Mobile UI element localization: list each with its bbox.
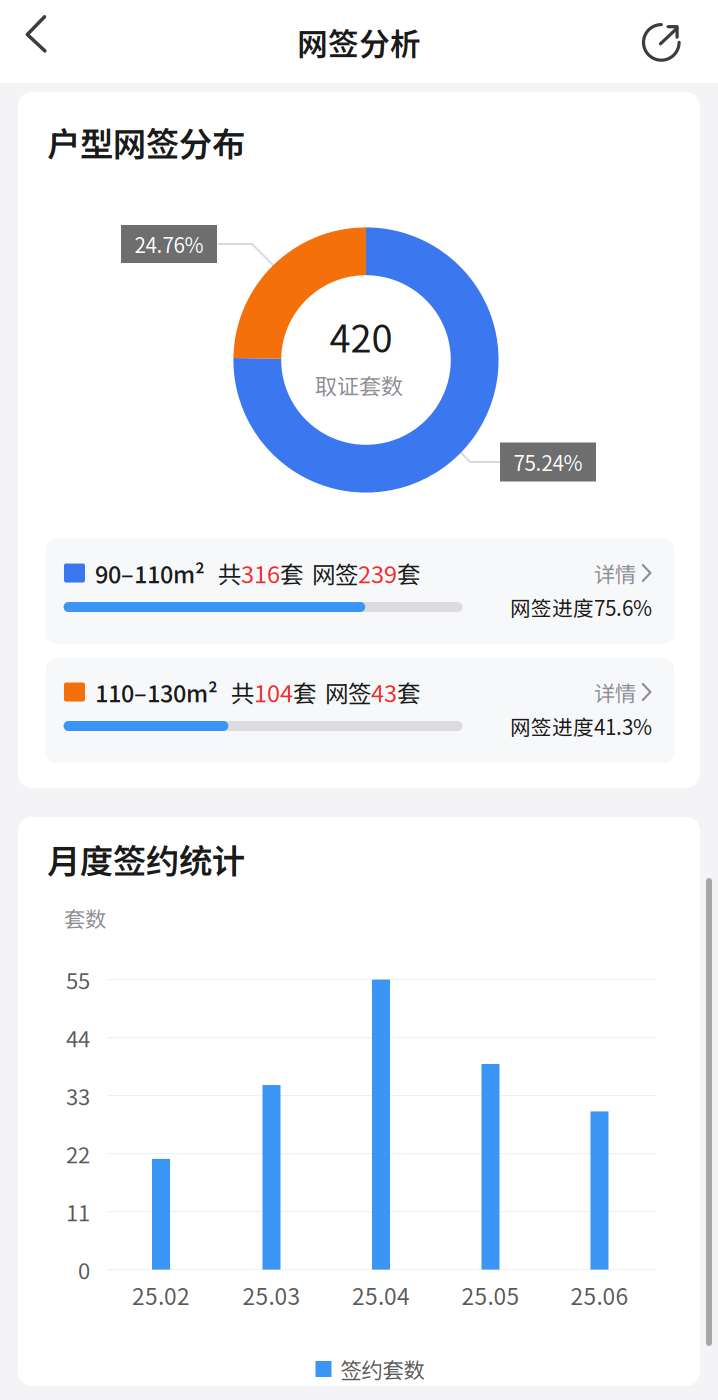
staticText: 0	[78, 1254, 90, 1286]
staticText: 共	[231, 675, 254, 709]
staticText: 网签进度41.3%	[510, 711, 652, 741]
staticText: 共	[218, 556, 241, 590]
staticText: 套数	[64, 903, 106, 933]
staticText: 104	[254, 675, 293, 709]
button[interactable]: Back	[3, 0, 71, 68]
staticText: 316	[241, 556, 280, 590]
staticText: 239	[358, 556, 397, 590]
staticText: 套	[397, 675, 420, 709]
staticText: 套	[280, 556, 303, 590]
button[interactable]: Share	[629, 8, 697, 76]
staticText: 55	[66, 964, 90, 996]
staticText: 25.04	[352, 1279, 410, 1311]
staticText: 110–130m²	[95, 675, 218, 709]
staticText: 详情	[594, 677, 636, 707]
staticText: 24.76%	[134, 229, 203, 259]
staticText: 网签	[312, 556, 358, 590]
staticText: 11	[66, 1196, 90, 1228]
staticText: 网签分析	[297, 20, 421, 64]
staticText: 420	[329, 308, 392, 363]
staticText: 网签进度75.6%	[510, 592, 652, 622]
staticText: 33	[66, 1080, 90, 1112]
staticText: 25.02	[132, 1279, 190, 1311]
staticText: 取证套数	[315, 369, 403, 401]
staticText: 签约套数	[340, 1354, 424, 1384]
staticText: 75.24%	[513, 447, 582, 477]
staticText: 详情	[594, 558, 636, 588]
staticText: 户型网签分布	[47, 118, 245, 166]
staticText: 月度签约统计	[47, 835, 245, 883]
staticText: 25.06	[570, 1279, 628, 1311]
button[interactable]: 110–130m²	[46, 658, 674, 763]
staticText: 43	[371, 675, 397, 709]
staticText: 25.05	[461, 1279, 519, 1311]
staticText: 22	[66, 1138, 90, 1170]
staticText: 网签	[325, 675, 371, 709]
staticText: 44	[66, 1022, 90, 1054]
staticText: 套	[397, 556, 420, 590]
staticText: 90–110m²	[95, 556, 205, 590]
button[interactable]: 90–110m²	[46, 539, 674, 644]
staticText: 套	[293, 675, 316, 709]
staticText: 25.03	[242, 1279, 300, 1311]
